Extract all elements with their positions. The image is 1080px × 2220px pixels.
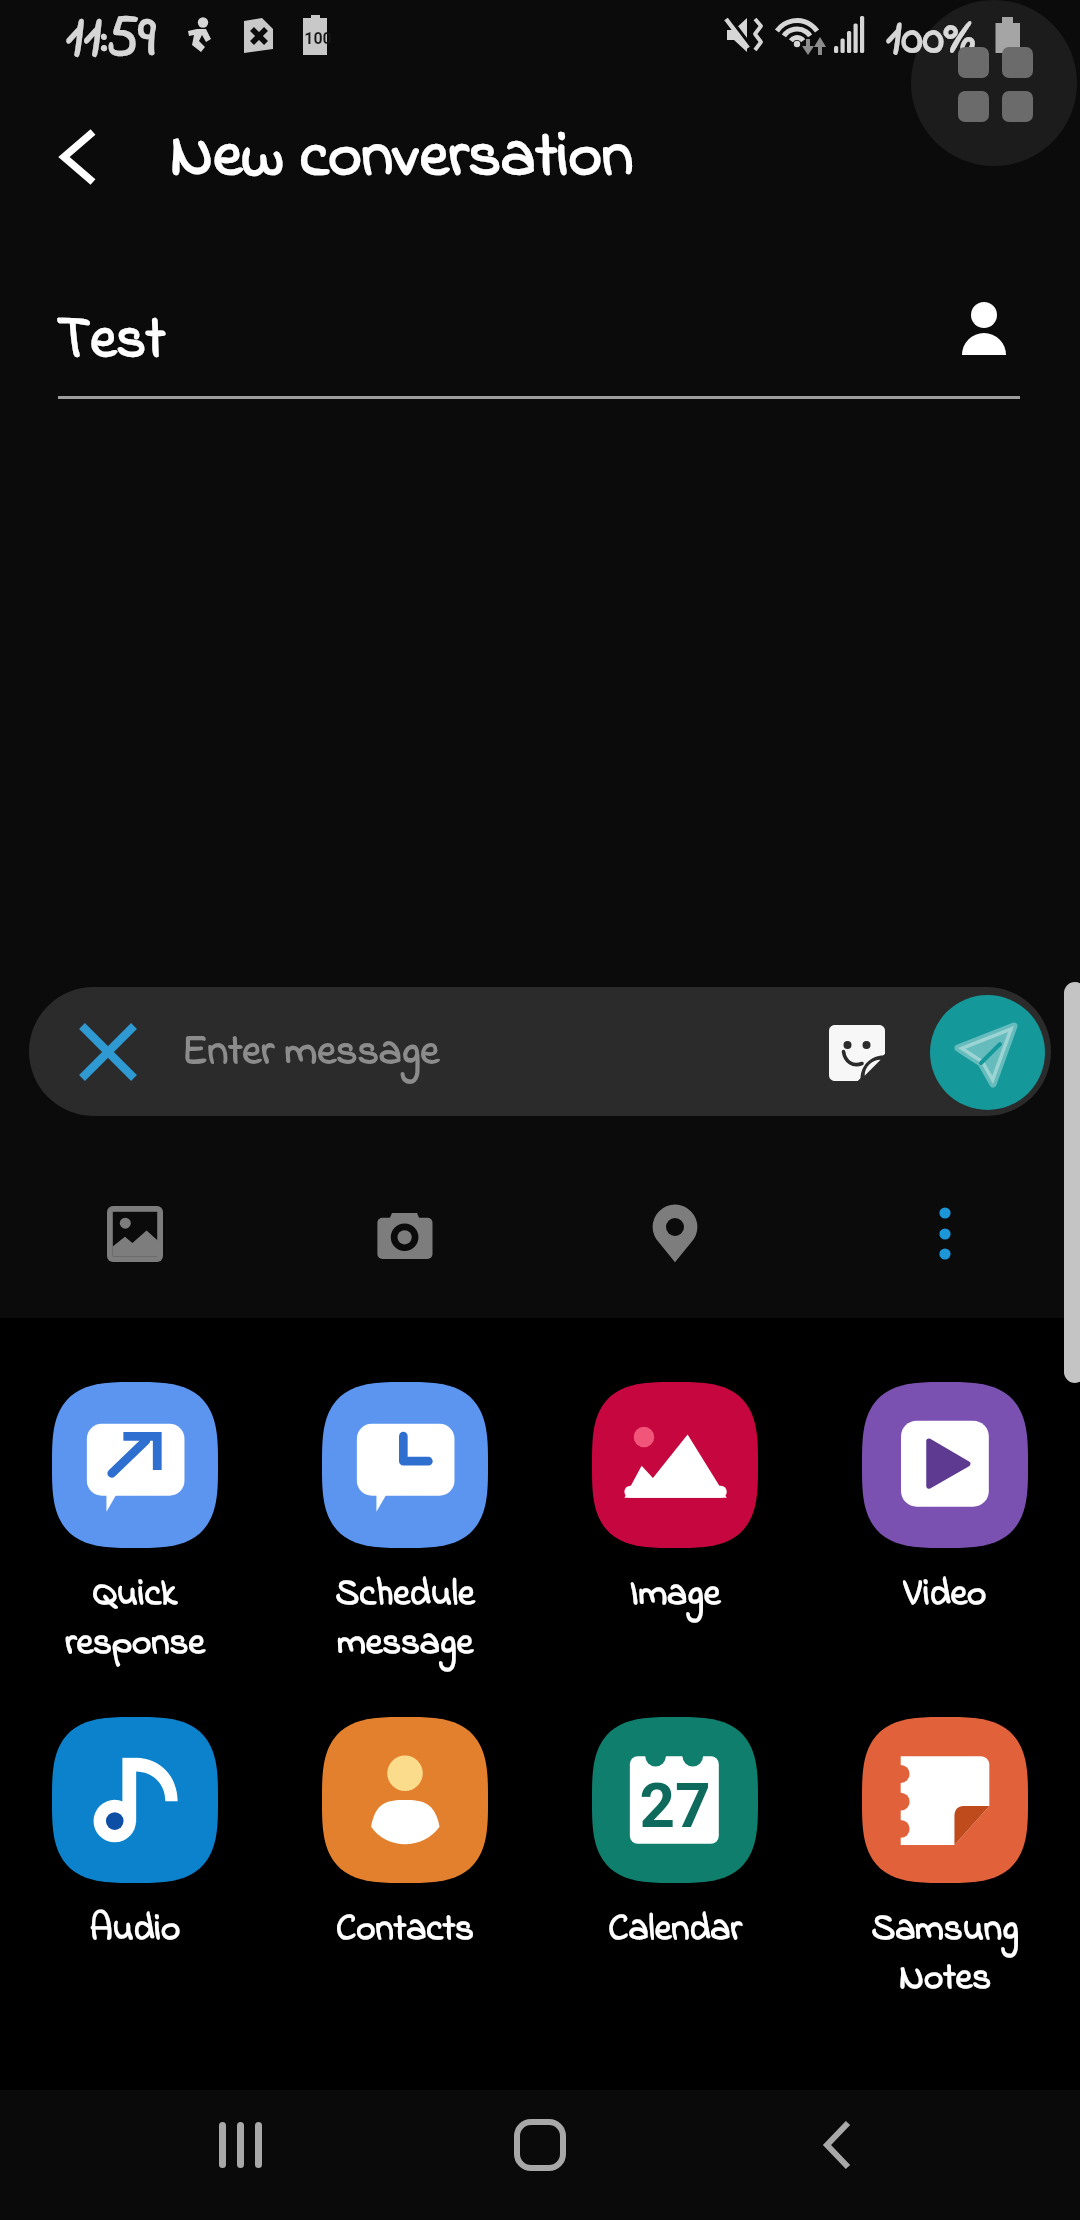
button[interactable]: Image — [540, 1362, 810, 1662]
staticText: Image — [540, 1568, 810, 1622]
staticText: 100 — [303, 29, 333, 48]
staticText: Video — [810, 1568, 1080, 1622]
staticText: 100% — [886, 4, 976, 75]
staticText: Calendar — [540, 1903, 810, 1957]
staticText: Contacts — [270, 1903, 540, 1957]
button[interactable]: Stickers — [814, 1010, 900, 1096]
staticText: Audio — [0, 1903, 270, 1957]
button[interactable]: Schedule message — [270, 1362, 540, 1662]
staticText: 11:59 — [66, 0, 156, 82]
button[interactable]: Attach image — [75, 1174, 195, 1294]
staticText: Enter message — [182, 1022, 440, 1083]
button[interactable]: Audio — [0, 1697, 270, 1997]
staticText: Schedule message — [270, 1568, 540, 1671]
staticText: Test — [57, 300, 166, 385]
button[interactable]: Contacts — [270, 1697, 540, 1997]
staticText: Samsung Notes — [810, 1903, 1080, 2006]
button[interactable]: App pair shortcut — [911, 0, 1077, 166]
staticText: New conversation — [170, 112, 634, 205]
staticText: Image — [540, 1568, 810, 1622]
button[interactable]: Send message — [930, 995, 1045, 1110]
staticText: Calendar — [540, 1903, 810, 1957]
button[interactable]: Samsung Notes — [810, 1697, 1080, 1997]
staticText: Samsung Notes — [810, 1903, 1080, 2006]
button[interactable]: Back — [780, 2086, 900, 2206]
button[interactable]: Navigate up — [30, 108, 128, 206]
staticText: Audio — [0, 1903, 270, 1957]
button[interactable]: More options — [885, 1174, 1005, 1294]
staticText: Quick response — [0, 1568, 270, 1671]
staticText: 11:59 — [66, 0, 156, 82]
button[interactable]: Home — [480, 2086, 600, 2206]
button[interactable]: Share location — [615, 1174, 735, 1294]
staticText: Quick response — [0, 1568, 270, 1671]
button[interactable]: Take picture — [345, 1174, 465, 1294]
staticText: Video — [810, 1568, 1080, 1622]
staticText: Schedule message — [270, 1568, 540, 1671]
button[interactable]: Add recipients — [928, 274, 1040, 386]
button[interactable]: Calendar — [540, 1697, 810, 1997]
staticText: 100% — [886, 4, 976, 75]
staticText: 27 — [592, 1769, 758, 1842]
button[interactable]: Recent apps — [180, 2086, 300, 2206]
staticText: Test — [57, 300, 166, 385]
staticText: Enter message — [182, 1022, 440, 1083]
staticText: Contacts — [270, 1903, 540, 1957]
button[interactable]: Quick response — [0, 1362, 270, 1662]
button[interactable]: Close — [56, 1000, 160, 1104]
staticText: New conversation — [170, 112, 634, 205]
button[interactable]: Video — [810, 1362, 1080, 1662]
